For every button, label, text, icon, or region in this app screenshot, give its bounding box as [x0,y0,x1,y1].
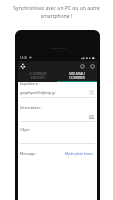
staticText: Synchronisez avec un PC ou un autre smar… [13,5,100,20]
button[interactable]: Choisir un contact [89,115,94,119]
staticText: Message : [20,151,37,156]
staticText: COURRIERS ENVOYÉS [29,72,47,80]
button[interactable]: Rechercher [78,62,86,70]
button[interactable]: Choisir un compte [90,91,93,94]
staticText: NOUVEAU COURRIER [69,72,85,80]
staticText: gxxphyxx55x@xxp.jp [20,90,56,95]
button[interactable]: Logo de l'application [19,62,27,70]
button[interactable]: Mode plein écran [65,151,93,156]
button[interactable]: NOUVEAU COURRIER [57,71,97,81]
button[interactable]: COURRIERS ENVOYÉS [18,71,57,81]
staticText: Expéditeur : [20,81,41,86]
staticText: Mode plein écran [65,151,93,156]
staticText: Destinataire : [20,105,43,110]
button[interactable]: Plus d'options [88,62,96,70]
staticText: 14:36 [20,56,28,60]
staticText: Objet : [20,127,32,132]
